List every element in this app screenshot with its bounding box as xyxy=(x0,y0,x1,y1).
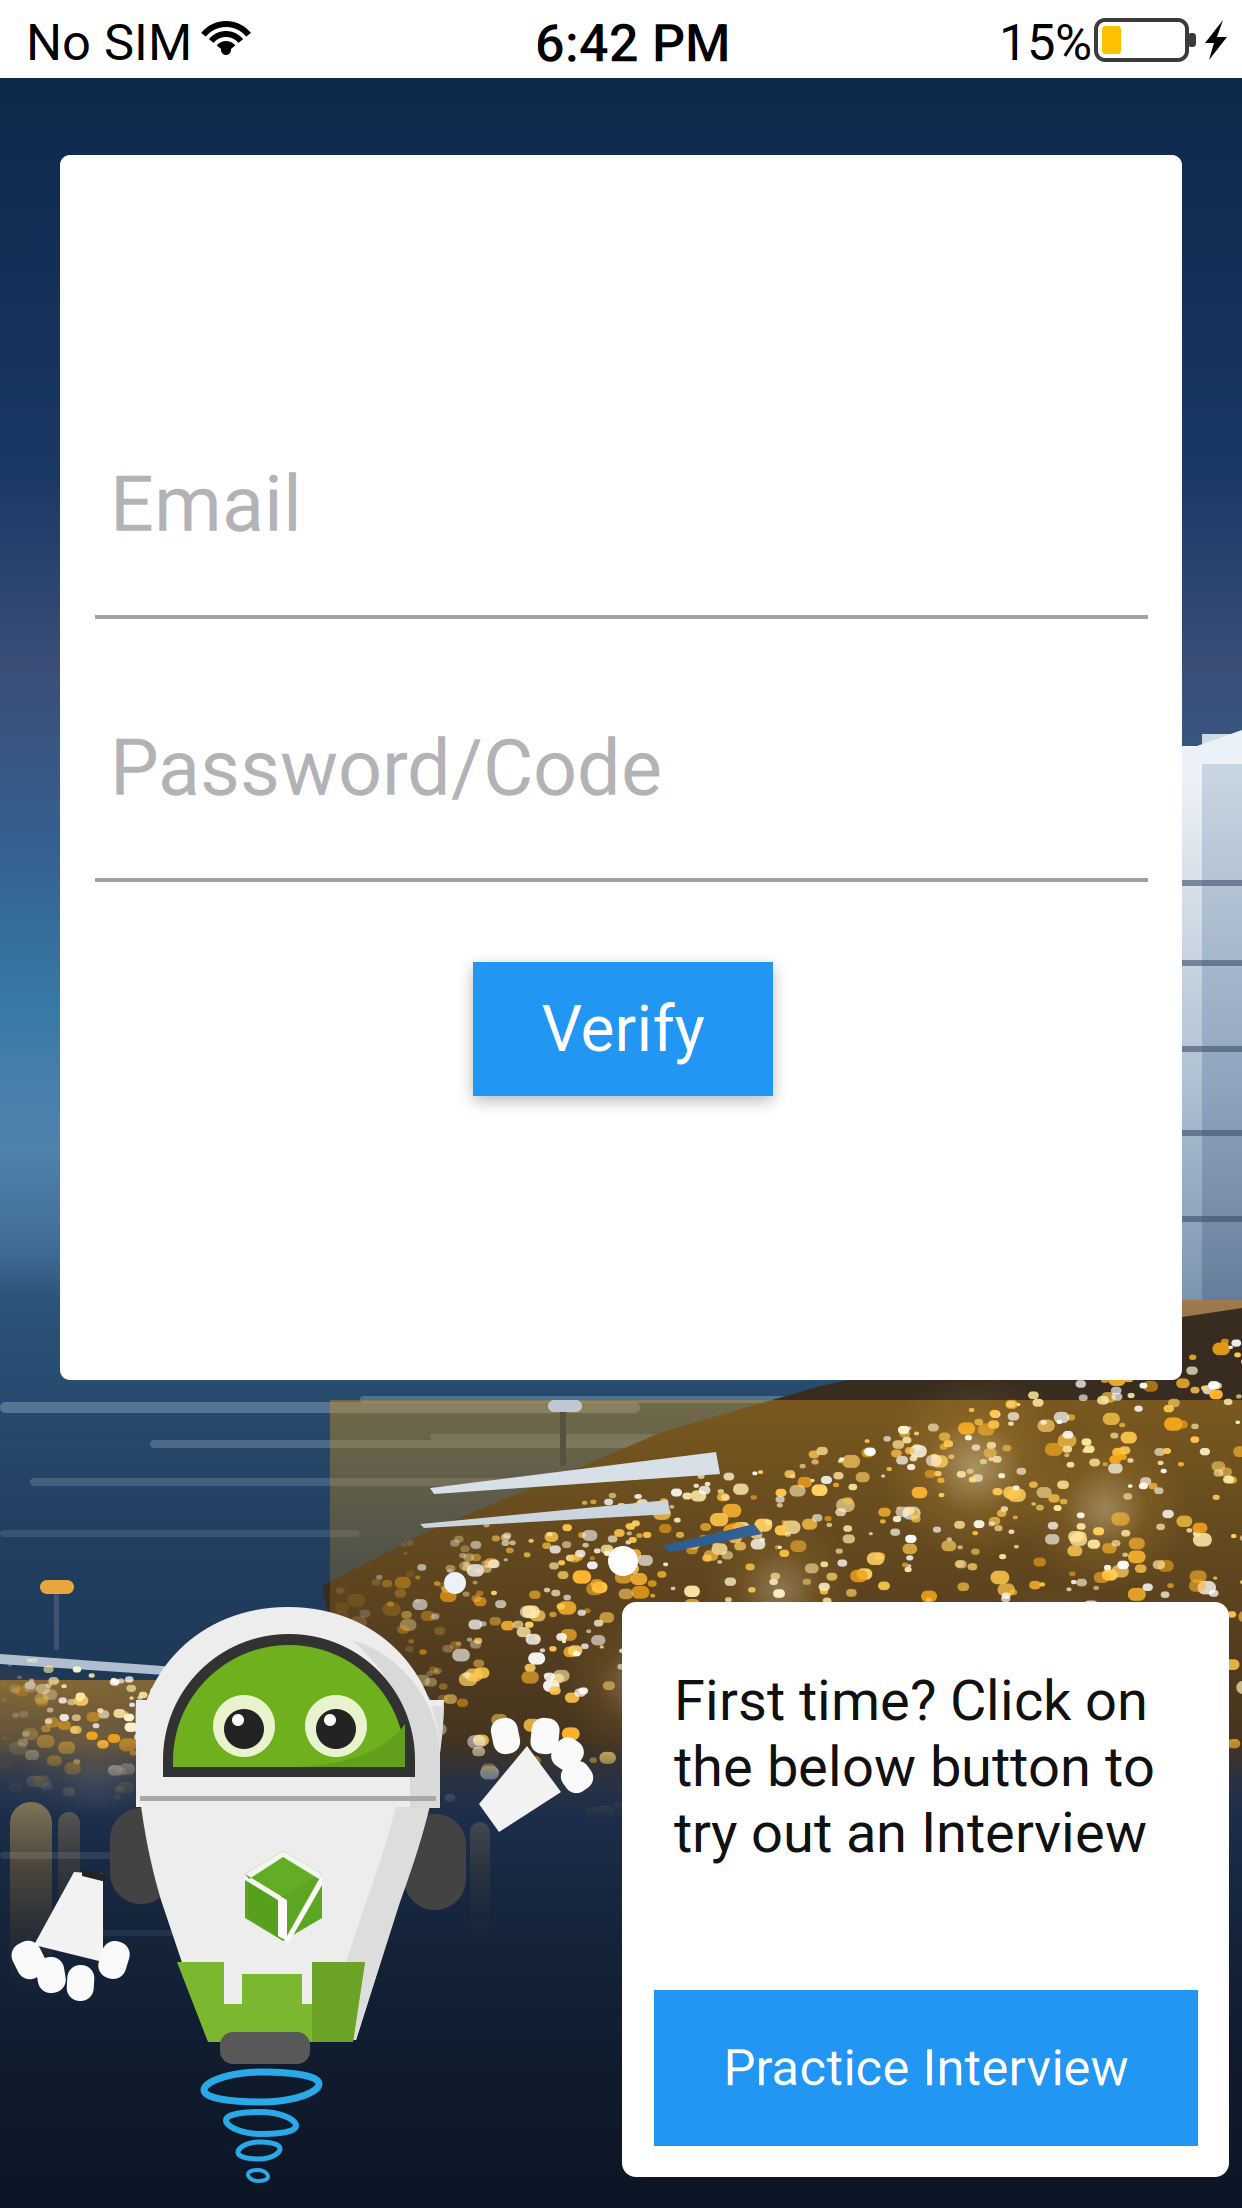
staticText: 6:42 PM xyxy=(535,13,730,74)
button[interactable]: Verify xyxy=(473,962,773,1096)
staticText: Verify xyxy=(541,991,704,1066)
staticText: No SIM xyxy=(26,13,192,72)
staticText: Email xyxy=(110,459,302,550)
staticText: 15% xyxy=(999,13,1092,72)
staticText: Practice Interview xyxy=(723,2038,1128,2098)
staticText: the below button to xyxy=(674,1734,1155,1800)
button[interactable]: Practice Interview xyxy=(654,1990,1198,2146)
staticText: First time? Click on xyxy=(674,1668,1148,1734)
staticText: try out an Interview xyxy=(674,1800,1147,1866)
staticText: Password/Code xyxy=(110,723,662,814)
